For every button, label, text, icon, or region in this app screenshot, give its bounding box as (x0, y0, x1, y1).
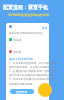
staticText: 配置流程：重置手机 (3, 4, 48, 10)
staticText: 查看 (42, 26, 48, 29)
staticText: 重置手机步骤说明 (9, 57, 33, 61)
staticText: 请仔细阅读并按步骤操作手机 (8, 13, 50, 17)
staticText: 如有疑问请联系客服 (9, 82, 33, 85)
staticText: 未完成 (13, 50, 22, 54)
staticText: 3、等待手机自动重启并完成初始化配置。 (9, 77, 58, 81)
staticText: 2、在重置页面中选择恢复出厂设置，阅读 (9, 69, 58, 73)
staticText: 立即开始 (16, 90, 28, 94)
staticText: 设备信息与系统版本查询方法 (9, 31, 43, 34)
staticText: 已完成 (13, 38, 22, 42)
button[interactable]: 立即开始 (10, 89, 34, 94)
staticText: 系统与更新选项，点击进入后选择重置。 (9, 65, 56, 68)
staticText: 提示信息后点击确认开始重置流程操作。 (9, 73, 56, 76)
staticText: 1、打开手机的设置应用，向下滚动并找到 (9, 61, 58, 65)
